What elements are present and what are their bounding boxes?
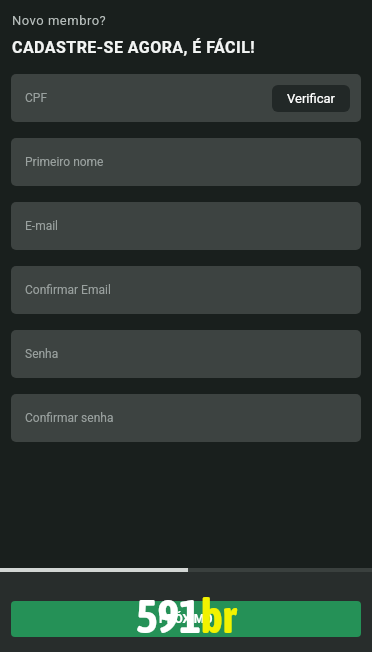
staticText: CADASTRE-SE AGORA, É FÁCIL!: [12, 38, 256, 57]
staticText: E-mail: [25, 219, 59, 233]
staticText: 591: [136, 590, 201, 643]
staticText: Confirmar senha: [25, 411, 114, 425]
staticText: Novo membro?: [12, 13, 107, 28]
staticText: Verificar: [287, 91, 335, 106]
staticText: CPF: [25, 91, 48, 105]
button[interactable]: Confirmar Email: [11, 266, 361, 314]
button[interactable]: Senha: [11, 330, 361, 378]
staticText: Primeiro nome: [25, 155, 104, 169]
staticText: Senha: [25, 347, 59, 361]
button[interactable]: CPF: [11, 74, 361, 122]
staticText: Confirmar Email: [25, 283, 111, 297]
button[interactable]: PRÓXIMO: [11, 601, 361, 637]
button[interactable]: E-mail: [11, 202, 361, 250]
staticText: br: [201, 590, 237, 643]
staticText: PRÓXIMO: [159, 612, 213, 626]
button[interactable]: Primeiro nome: [11, 138, 361, 186]
button[interactable]: Confirmar senha: [11, 394, 361, 442]
button[interactable]: Verificar: [272, 85, 350, 112]
